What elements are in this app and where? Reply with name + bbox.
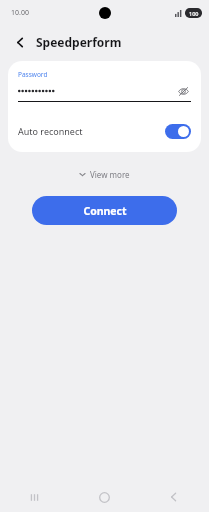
staticText: View more bbox=[90, 169, 130, 180]
staticText: 10.00 bbox=[11, 8, 29, 18]
button[interactable]: Home bbox=[69, 482, 139, 512]
button[interactable]: Auto reconnect bbox=[18, 119, 191, 143]
button[interactable]: Recents bbox=[0, 482, 69, 512]
staticText: Password bbox=[18, 70, 48, 79]
staticText: 100 bbox=[189, 10, 199, 17]
button[interactable]: Back bbox=[139, 482, 209, 512]
button[interactable]: Show password bbox=[175, 83, 191, 99]
staticText: Speedperform bbox=[36, 34, 122, 50]
button[interactable]: Auto reconnect bbox=[165, 124, 191, 139]
button[interactable]: Connect bbox=[32, 196, 177, 225]
button[interactable]: Back bbox=[9, 31, 31, 53]
button[interactable]: View more bbox=[73, 167, 136, 182]
staticText: Connect bbox=[83, 204, 127, 218]
staticText: Auto reconnect bbox=[18, 125, 165, 137]
